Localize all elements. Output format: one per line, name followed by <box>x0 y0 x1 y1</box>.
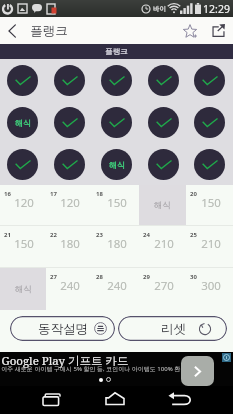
staticText: 120 <box>60 195 80 211</box>
button[interactable]: Recent apps <box>37 389 67 411</box>
staticText: 플랭크 <box>105 47 128 56</box>
staticText: 24 <box>143 231 150 239</box>
button[interactable] <box>7 65 38 96</box>
staticText: 30 <box>190 273 197 281</box>
button[interactable] <box>194 149 225 180</box>
staticText: 180 <box>60 236 80 252</box>
button[interactable]: 23 <box>92 226 139 267</box>
staticText: 22 <box>50 231 57 239</box>
staticText: 18 <box>96 190 103 198</box>
staticText: 25 <box>190 231 197 239</box>
button[interactable]: Back <box>164 389 194 411</box>
staticText: 17 <box>50 190 57 198</box>
staticText: 270 <box>154 278 174 294</box>
button[interactable] <box>148 107 179 138</box>
staticText: 210 <box>154 236 174 252</box>
staticText: 해식 <box>15 118 31 128</box>
button[interactable]: Share <box>204 17 232 44</box>
button[interactable]: 16 <box>0 185 46 225</box>
button[interactable]: 28 <box>92 268 139 310</box>
button[interactable]: Open ad <box>181 356 214 386</box>
staticText: 해식 <box>109 160 125 170</box>
staticText: 180 <box>107 236 127 252</box>
staticText: 210 <box>201 236 221 252</box>
staticText: 16 <box>4 190 11 198</box>
button[interactable]: 17 <box>46 185 92 225</box>
button[interactable]: 30 <box>186 268 233 310</box>
button[interactable]: 해식 <box>7 107 38 138</box>
button[interactable]: 25 <box>186 226 233 267</box>
staticText: 플랭크 <box>30 23 68 39</box>
staticText: 120 <box>14 195 34 211</box>
staticText: 21 <box>4 231 11 239</box>
staticText: 150 <box>107 195 127 211</box>
button[interactable]: 20 <box>186 185 233 225</box>
staticText: 300 <box>201 278 221 294</box>
staticText: 12:29 <box>203 2 230 16</box>
button[interactable]: 해식 <box>139 185 186 225</box>
staticText: 23 <box>96 231 103 239</box>
staticText: Google Play 기프트 카드 <box>1 353 129 369</box>
button[interactable]: Favorite <box>176 17 204 44</box>
staticText: 240 <box>60 278 80 294</box>
button[interactable] <box>101 107 132 138</box>
button[interactable] <box>54 107 85 138</box>
staticText: 28 <box>96 273 103 281</box>
button[interactable]: 21 <box>0 226 46 267</box>
staticText: 150 <box>14 236 34 252</box>
staticText: 해식 <box>15 284 32 295</box>
staticText: 리셋 <box>161 321 186 337</box>
button[interactable] <box>54 65 85 96</box>
button[interactable] <box>148 149 179 180</box>
button[interactable] <box>194 107 225 138</box>
staticText: 240 <box>107 278 127 294</box>
staticText: 바이 <box>153 5 166 13</box>
button[interactable] <box>54 149 85 180</box>
button[interactable]: Home <box>100 389 130 411</box>
button[interactable]: 27 <box>46 268 92 310</box>
button[interactable]: 해식 <box>101 149 132 180</box>
button[interactable] <box>7 149 38 180</box>
staticText: 이주 새로운 아이템 구매시 5% 할인 등, 코인이나 아이템도 100% 환… <box>1 365 200 373</box>
staticText: 27 <box>50 273 57 281</box>
button[interactable]: 18 <box>92 185 139 225</box>
staticText: 해식 <box>154 200 171 211</box>
button[interactable]: Exercise description <box>10 316 115 341</box>
button[interactable]: Back <box>0 19 24 43</box>
staticText: 동작설명 <box>38 321 88 337</box>
button[interactable]: 22 <box>46 226 92 267</box>
button[interactable]: 해식 <box>0 268 46 310</box>
button[interactable] <box>101 65 132 96</box>
button[interactable]: 29 <box>139 268 186 310</box>
button[interactable] <box>194 65 225 96</box>
staticText: 29 <box>143 273 150 281</box>
button[interactable]: 24 <box>139 226 186 267</box>
staticText: 20 <box>190 190 197 198</box>
button[interactable]: Reset <box>118 316 227 341</box>
staticText: 150 <box>201 195 221 211</box>
button[interactable] <box>148 65 179 96</box>
